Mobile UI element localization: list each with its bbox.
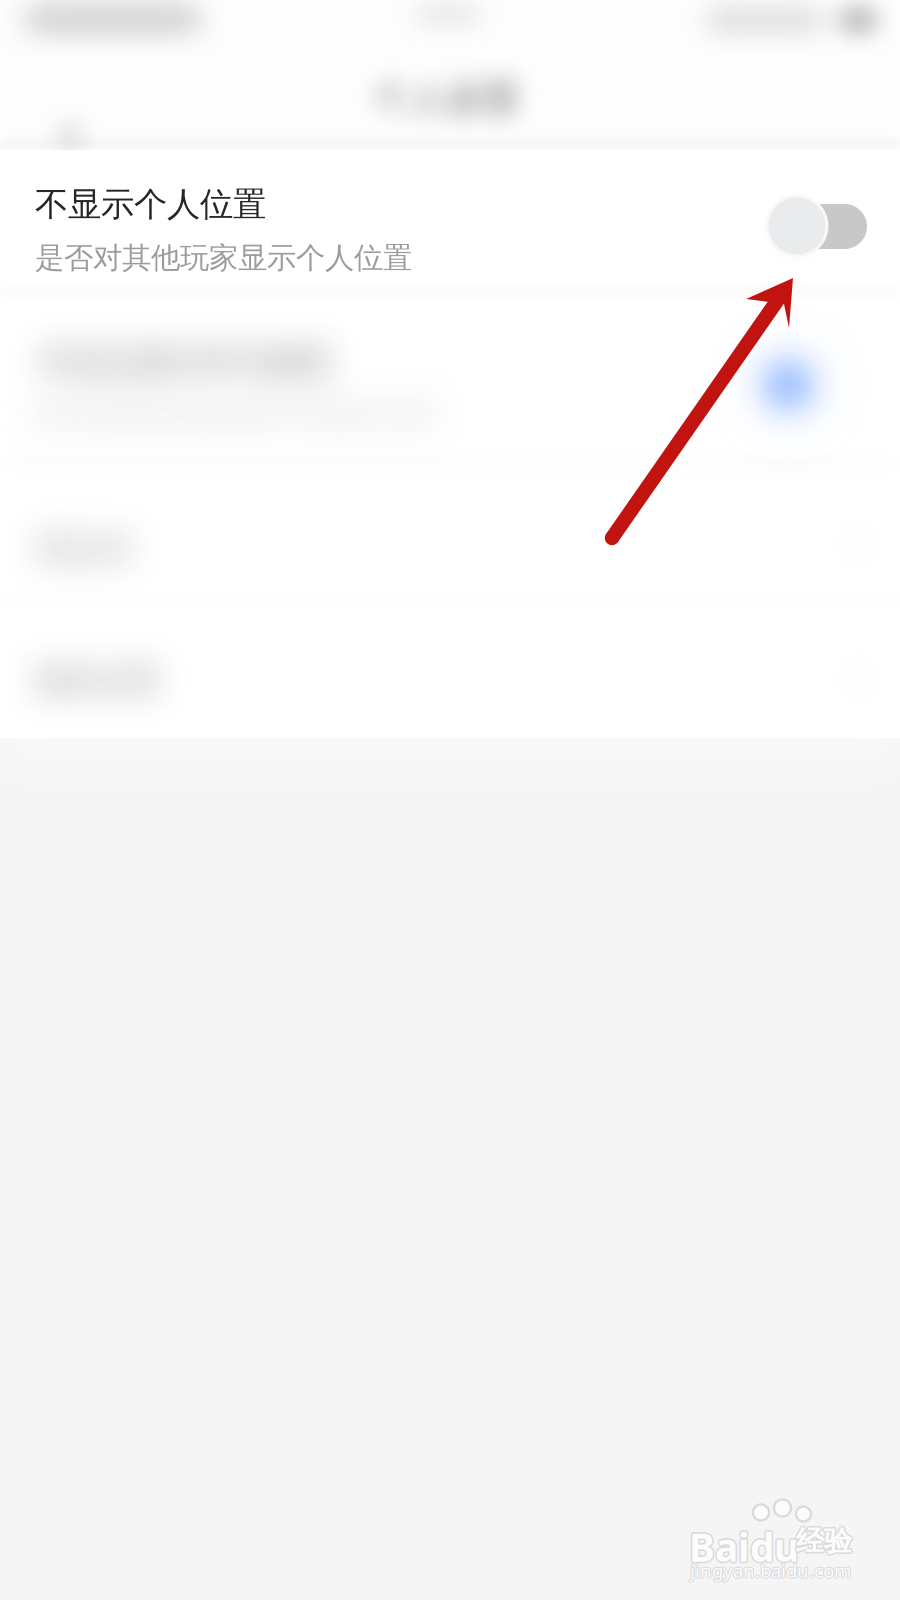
button[interactable]: 不显示个人位置 <box>0 150 900 292</box>
staticText: 经验 <box>795 1523 851 1557</box>
staticText: Baidu <box>689 1519 799 1571</box>
staticText: Baidu <box>687 1521 797 1572</box>
staticText: jingyan.baidu.com <box>691 1559 852 1583</box>
button[interactable]: 返回 <box>0 0 84 84</box>
staticText: jingyan.baidu.com <box>690 1557 851 1582</box>
staticText: Baidu <box>689 1523 799 1574</box>
staticText: jingyan.baidu.com <box>689 1558 850 1583</box>
staticText: jingyan.baidu.com <box>690 1558 851 1583</box>
staticText: Baidu <box>688 1522 798 1573</box>
staticText: jingyan.baidu.com <box>689 1557 850 1582</box>
staticText: Baidu <box>690 1522 800 1573</box>
staticText: 经验 <box>796 1522 852 1557</box>
button[interactable]: 不显示个人位置开关 <box>753 188 883 264</box>
staticText: Baidu <box>691 1521 801 1572</box>
staticText: Baidu <box>689 1521 799 1572</box>
staticText: 是否对其他玩家显示个人位置 <box>35 240 412 276</box>
staticText: jingyan.baidu.com <box>691 1558 852 1583</box>
staticText: 经验 <box>797 1525 853 1559</box>
staticText: jingyan.baidu.com <box>691 1557 852 1582</box>
staticText: 经验 <box>797 1523 853 1557</box>
staticText: 经验 <box>796 1526 852 1560</box>
staticText: 经验 <box>796 1524 852 1558</box>
staticText: 经验 <box>795 1525 851 1559</box>
staticText: Baidu <box>690 1520 800 1571</box>
staticText: 不显示个人位置 <box>35 184 266 225</box>
staticText: 经验 <box>798 1524 854 1558</box>
staticText: jingyan.baidu.com <box>690 1559 851 1584</box>
staticText: Baidu <box>688 1520 798 1571</box>
staticText: 经验 <box>794 1524 850 1558</box>
staticText: jingyan.baidu.com <box>689 1559 850 1583</box>
